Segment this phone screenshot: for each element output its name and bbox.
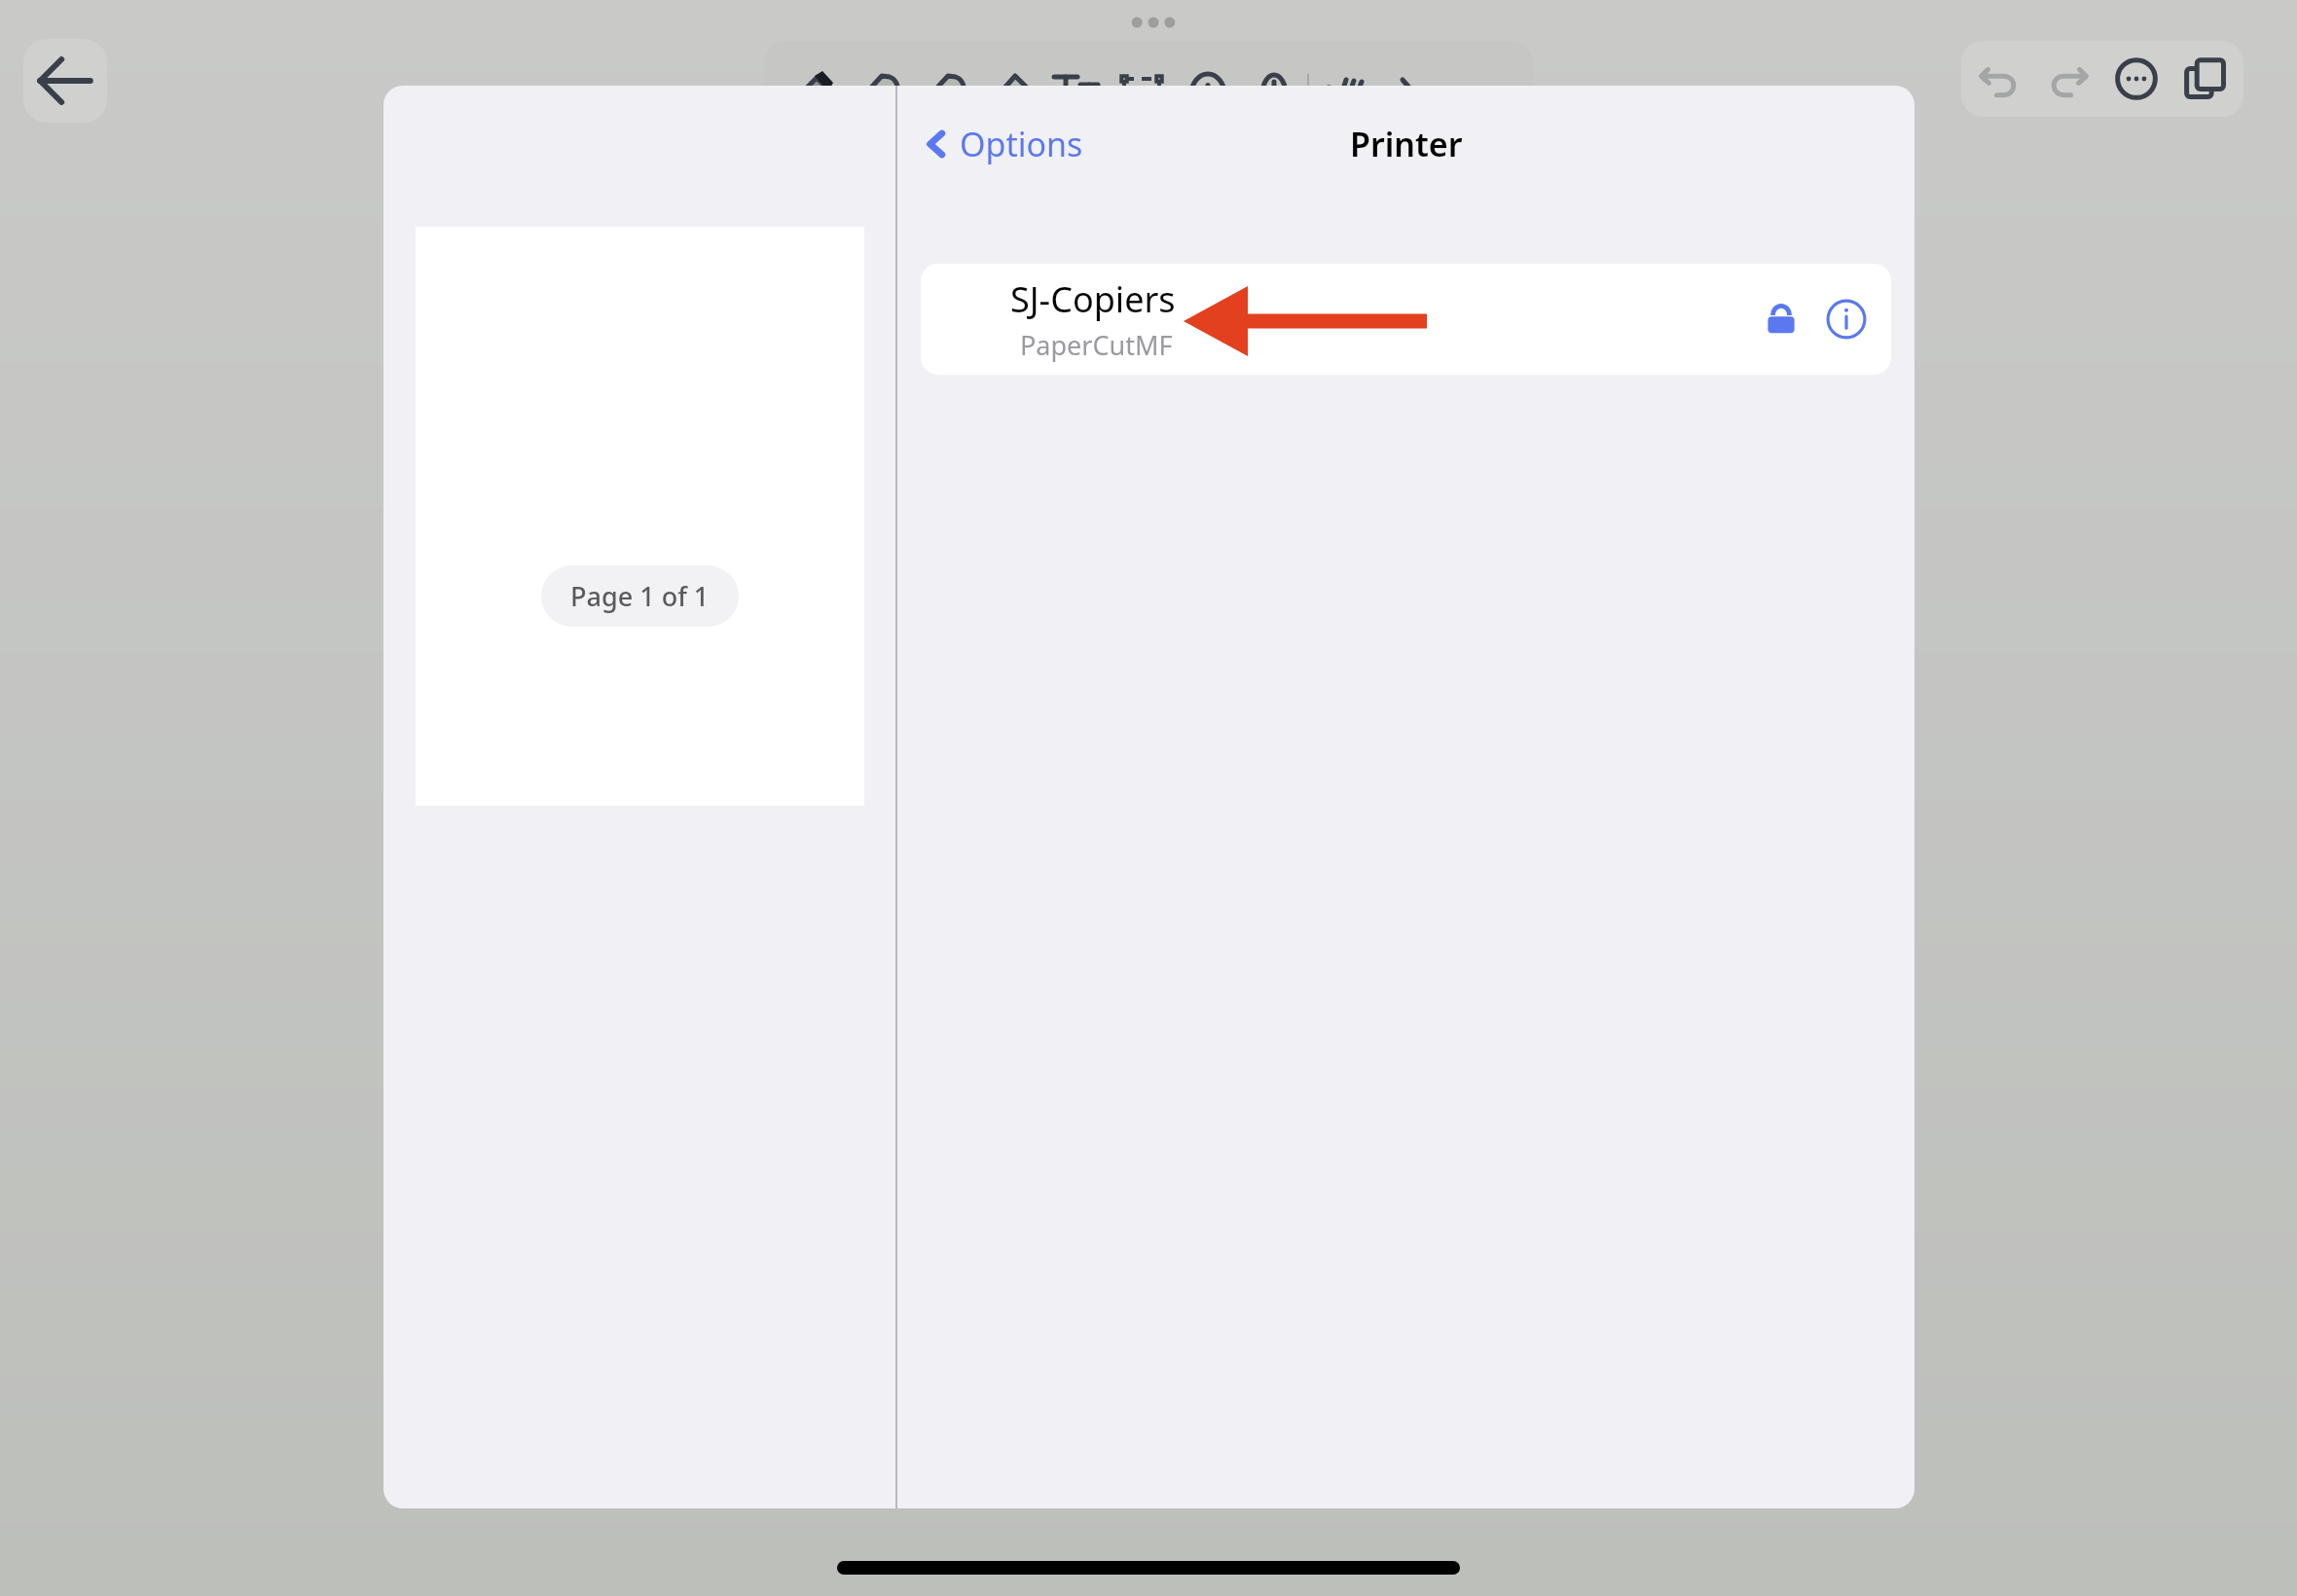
staticText: PaperCutMF xyxy=(1020,327,1173,363)
button[interactable]: Printer info xyxy=(1823,296,1870,343)
button[interactable]: Pages xyxy=(2174,48,2237,110)
button[interactable]: More options xyxy=(2105,48,2168,110)
button[interactable]: Back xyxy=(23,39,107,123)
staticText: SJ-Copiers xyxy=(1010,275,1176,323)
button[interactable]: Eraser xyxy=(910,41,976,119)
button[interactable]: Page 1 of 1 xyxy=(541,565,739,627)
button[interactable]: Hand xyxy=(1309,41,1375,119)
staticText: Printer xyxy=(1350,122,1463,166)
button[interactable]: Text xyxy=(1042,41,1109,119)
button[interactable]: Highlighter xyxy=(844,41,910,119)
button[interactable]: Insert xyxy=(1241,41,1307,119)
button[interactable]: Pen xyxy=(778,41,844,119)
button[interactable]: Options xyxy=(915,116,1089,172)
button[interactable]: Undo xyxy=(1968,48,2030,110)
button[interactable]: Shapes xyxy=(976,41,1042,119)
button[interactable]: Add xyxy=(1175,41,1241,119)
other: Secured printer xyxy=(1761,299,1802,340)
button[interactable]: Redo xyxy=(2037,48,2099,110)
button[interactable]: SJ-Copiers xyxy=(921,264,1891,375)
button[interactable]: More tools xyxy=(1375,41,1441,119)
staticText: Page 1 of 1 xyxy=(570,578,710,614)
staticText: Options xyxy=(960,122,1083,166)
button[interactable]: Select xyxy=(1109,41,1175,119)
